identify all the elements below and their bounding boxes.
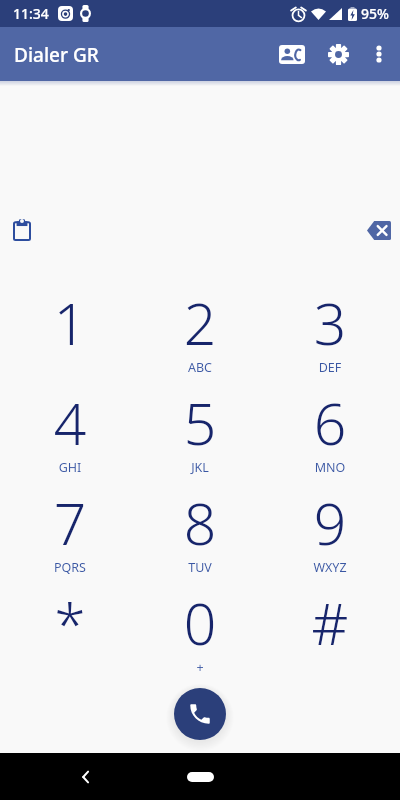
staticText: JKL (135, 459, 265, 476)
staticText: * (5, 584, 135, 662)
button[interactable]: 8 (135, 482, 265, 582)
staticText: Dialer GR (14, 42, 99, 68)
button[interactable]: Home (187, 772, 214, 782)
staticText: ABC (135, 359, 265, 376)
button[interactable]: 0 (135, 582, 265, 682)
button[interactable]: 3 (265, 282, 395, 382)
button[interactable]: 7 (5, 482, 135, 582)
button[interactable]: * (5, 582, 135, 682)
button[interactable]: 2 (135, 282, 265, 382)
button[interactable]: More options (358, 33, 400, 75)
button[interactable]: 9 (265, 482, 395, 582)
staticText: 95% (361, 4, 389, 23)
staticText: # (265, 584, 395, 662)
button[interactable]: 4 (5, 382, 135, 482)
staticText: MNO (265, 459, 395, 476)
button[interactable]: 6 (265, 382, 395, 482)
staticText: 6 (265, 384, 395, 462)
button[interactable]: # (265, 582, 395, 682)
staticText: GHI (5, 459, 135, 476)
button[interactable]: Paste (1, 209, 43, 251)
staticText: 0 (135, 584, 265, 662)
staticText: DEF (265, 359, 395, 376)
staticText: 9 (265, 484, 395, 562)
staticText: 11:34 (13, 4, 49, 23)
staticText: 4 (5, 384, 135, 462)
button[interactable]: Settings (316, 32, 360, 76)
button[interactable]: Back (66, 757, 106, 797)
staticText: 8 (135, 484, 265, 562)
staticText: WXYZ (265, 559, 395, 576)
staticText: 3 (265, 284, 395, 362)
button[interactable]: 5 (135, 382, 265, 482)
staticText: 5 (135, 384, 265, 462)
button[interactable]: 1 (5, 282, 135, 382)
staticText: + (135, 659, 265, 676)
staticText: 2 (135, 284, 265, 362)
staticText: 7 (5, 484, 135, 562)
button[interactable]: Call (174, 688, 226, 740)
button[interactable]: Backspace (358, 209, 400, 251)
staticText: TUV (135, 559, 265, 576)
staticText: PQRS (5, 559, 135, 576)
staticText: 1 (5, 284, 135, 362)
button[interactable]: Contacts (270, 32, 314, 76)
